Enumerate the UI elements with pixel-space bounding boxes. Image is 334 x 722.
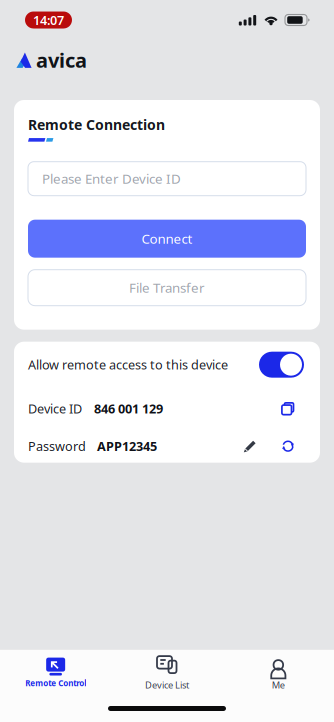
staticText: Remote Control — [25, 678, 86, 688]
staticText: avica — [36, 46, 87, 74]
staticText: APP12345 — [97, 437, 157, 455]
staticText: File Transfer — [129, 279, 205, 297]
button[interactable]: Allow remote access to this device — [259, 352, 304, 378]
button[interactable]: Copy Device ID — [281, 402, 295, 416]
button[interactable]: Refresh password — [281, 439, 295, 453]
button[interactable]: Device List — [111, 650, 223, 705]
button[interactable]: Connect — [28, 220, 306, 258]
staticText: Device List — [145, 679, 189, 691]
staticText: Connect — [141, 230, 192, 248]
staticText: 846 001 129 — [94, 400, 163, 417]
button[interactable]: Me — [223, 650, 334, 705]
staticText: 14:07 — [33, 11, 64, 29]
staticText: Me — [272, 679, 285, 691]
button[interactable]: File Transfer — [28, 270, 306, 306]
button[interactable]: Edit password — [243, 439, 257, 453]
button[interactable]: Remote Control — [0, 650, 111, 705]
staticText: Please Enter Device ID — [42, 170, 181, 188]
staticText: Allow remote access to this device — [28, 356, 228, 373]
staticText: Password — [28, 437, 86, 455]
staticText: Device ID — [28, 400, 82, 417]
staticText: Remote Connection — [28, 115, 165, 134]
